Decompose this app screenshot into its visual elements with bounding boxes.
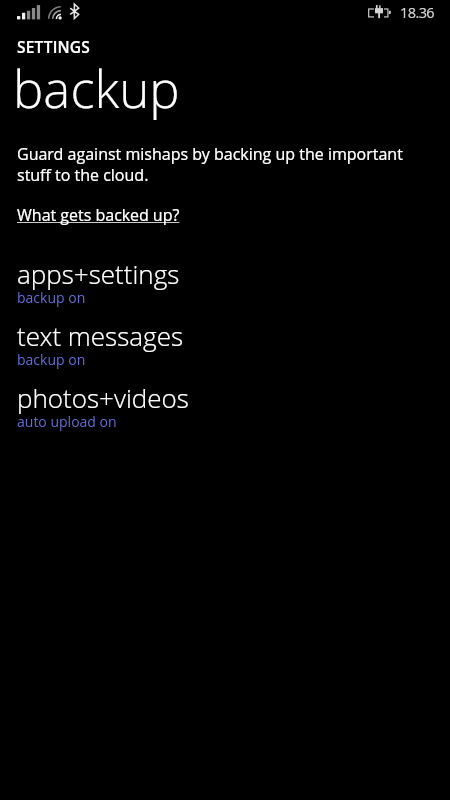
staticText: backup [13, 53, 180, 122]
staticText: What gets backed up? [17, 204, 180, 226]
other: Mobile signal strength [16, 4, 41, 20]
staticText: 18.36 [400, 3, 435, 23]
staticText: Guard against mishaps by backing up the … [17, 143, 412, 186]
staticText: text messages [17, 318, 184, 353]
staticText: apps+settings [17, 256, 180, 291]
other: Wi-Fi [46, 3, 66, 23]
staticText: SETTINGS [17, 36, 90, 57]
button[interactable]: apps+settings [0, 256, 450, 314]
button[interactable]: photos+videos [0, 380, 450, 438]
other: Battery charging [366, 4, 393, 20]
staticText: backup on [17, 350, 86, 369]
other: Bluetooth [70, 4, 81, 20]
staticText: photos+videos [17, 380, 189, 415]
button[interactable]: text messages [0, 318, 450, 376]
button[interactable]: What gets backed up? [17, 204, 180, 226]
staticText: backup on [17, 288, 86, 307]
staticText: auto upload on [17, 412, 117, 431]
